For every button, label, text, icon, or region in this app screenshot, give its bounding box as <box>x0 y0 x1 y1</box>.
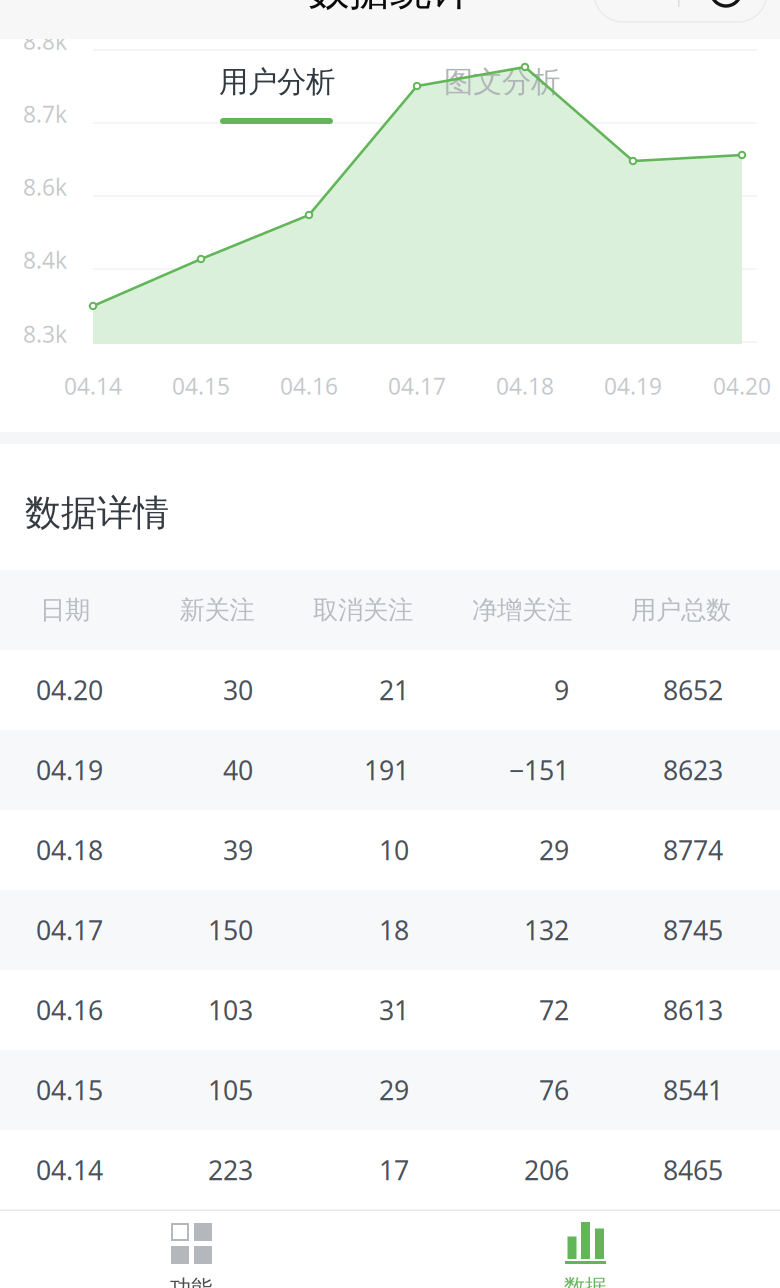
staticText: 取消关注 <box>313 594 413 625</box>
staticText: 8.7k <box>23 99 67 129</box>
staticText: 132 <box>524 912 569 948</box>
staticText: 数据统计 <box>308 0 472 16</box>
staticText: 30 <box>223 672 253 708</box>
staticText: 29 <box>379 1072 409 1108</box>
button[interactable]: 功能 <box>0 1211 390 1288</box>
staticText: 新关注 <box>179 594 254 625</box>
staticText: 04.15 <box>36 1072 103 1108</box>
button[interactable]: Mini program menu <box>594 0 767 22</box>
staticText: 用户分析 <box>219 64 335 100</box>
staticText: 净增关注 <box>472 594 572 625</box>
staticText: 功能 <box>170 1275 212 1288</box>
staticText: 8613 <box>663 992 723 1028</box>
staticText: 191 <box>364 752 409 788</box>
staticText: 04.20 <box>713 371 771 401</box>
staticText: 04.14 <box>64 371 122 401</box>
staticText: 8541 <box>663 1072 723 1108</box>
staticText: 39 <box>223 832 253 868</box>
staticText: 04.19 <box>604 371 662 401</box>
staticText: 用户总数 <box>631 594 731 625</box>
staticText: 日期 <box>40 594 90 625</box>
staticText: 10 <box>379 832 409 868</box>
staticText: 29 <box>539 832 569 868</box>
staticText: 9 <box>554 672 569 708</box>
staticText: 04.18 <box>496 371 554 401</box>
staticText: 数据 <box>564 1274 606 1288</box>
staticText: 04.18 <box>36 832 103 868</box>
staticText: 04.15 <box>172 371 230 401</box>
staticText: 8745 <box>663 912 723 948</box>
staticText: 图文分析 <box>444 64 560 100</box>
staticText: 8774 <box>663 832 723 868</box>
staticText: 04.17 <box>36 912 103 948</box>
staticText: 17 <box>379 1152 409 1188</box>
staticText: 04.14 <box>36 1152 103 1188</box>
staticText: 72 <box>539 992 569 1028</box>
staticText: 8.4k <box>23 245 67 275</box>
staticText: 8.6k <box>23 172 67 202</box>
staticText: 103 <box>208 992 253 1028</box>
staticText: 206 <box>524 1152 569 1188</box>
staticText: 数据详情 <box>25 491 169 535</box>
staticText: 8.3k <box>23 319 67 349</box>
staticText: 8465 <box>663 1152 723 1188</box>
staticText: 04.16 <box>36 992 103 1028</box>
staticText: 76 <box>539 1072 569 1108</box>
staticText: 223 <box>208 1152 253 1188</box>
staticText: 04.19 <box>36 752 103 788</box>
staticText: 04.20 <box>36 672 103 708</box>
staticText: 8652 <box>663 672 723 708</box>
staticText: 150 <box>208 912 253 948</box>
staticText: 04.17 <box>388 371 446 401</box>
staticText: −151 <box>509 752 569 788</box>
staticText: 8623 <box>663 752 723 788</box>
staticText: 8.8k <box>23 26 67 56</box>
button[interactable]: 数据 <box>390 1211 780 1288</box>
staticText: 40 <box>223 752 253 788</box>
staticText: 04.16 <box>280 371 338 401</box>
staticText: 105 <box>208 1072 253 1108</box>
staticText: 31 <box>379 992 409 1028</box>
staticText: 21 <box>379 672 409 708</box>
staticText: 18 <box>379 912 409 948</box>
